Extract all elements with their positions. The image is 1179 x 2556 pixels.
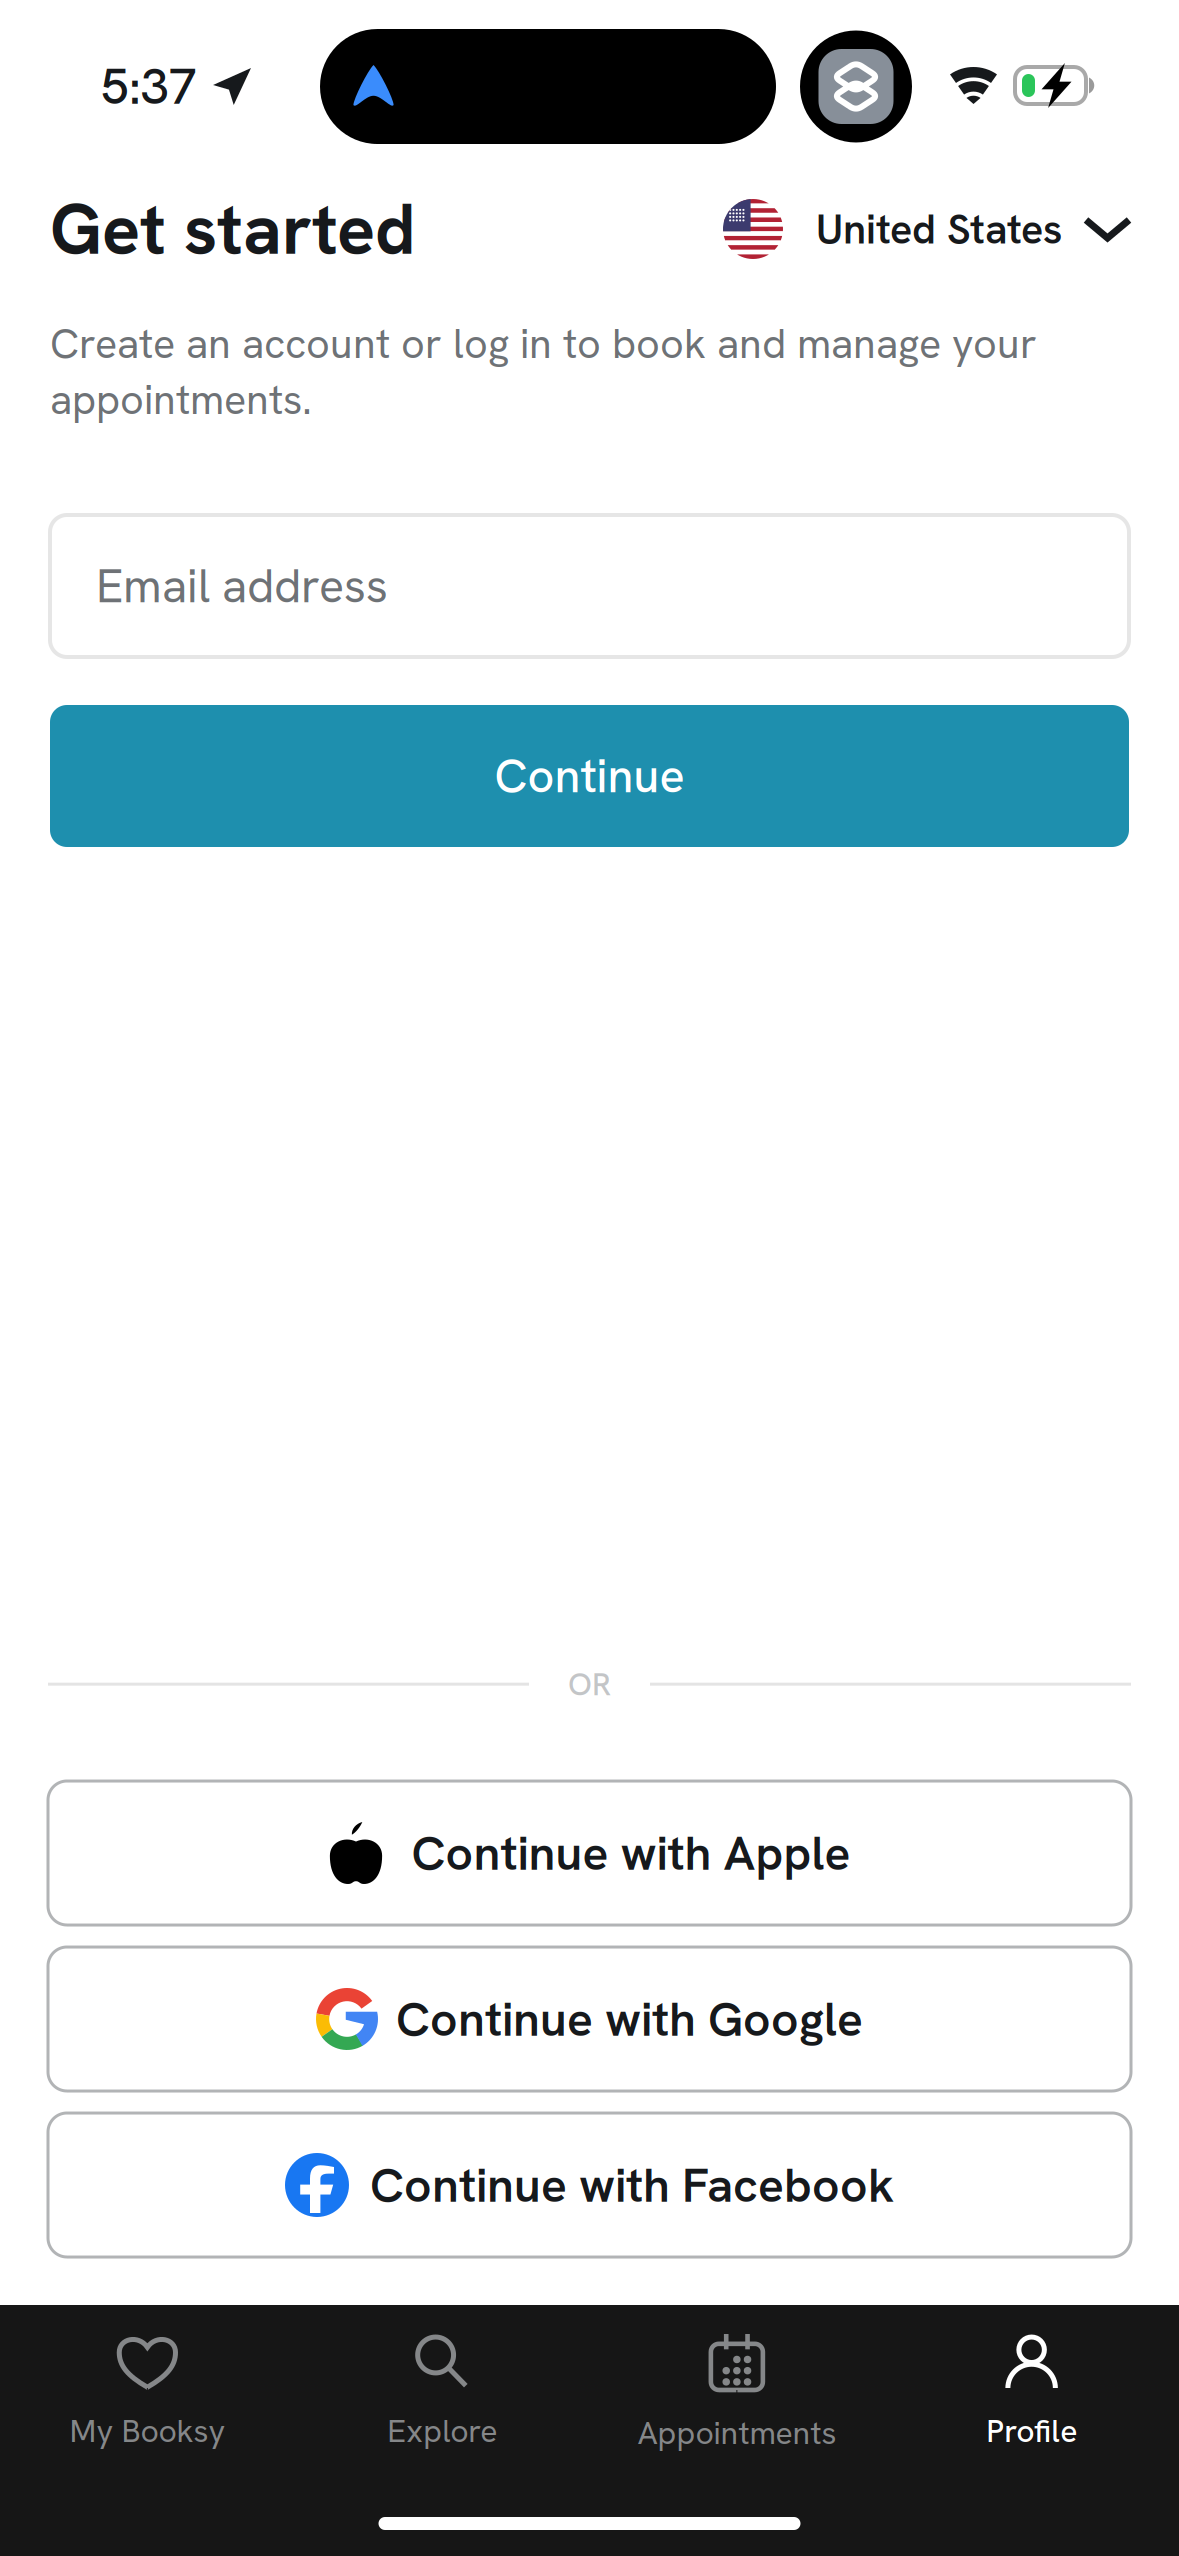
staticText: Continue with Apple: [411, 1822, 850, 1884]
button[interactable]: Continue with Google: [48, 1947, 1131, 2091]
button[interactable]: United States: [723, 199, 1129, 259]
staticText: Continue: [494, 746, 684, 806]
staticText: Get started: [50, 183, 416, 275]
staticText: OR: [568, 1663, 611, 1705]
staticText: appointments.: [50, 373, 312, 426]
staticText: Explore: [387, 2410, 497, 2452]
button[interactable]: My Booksy: [0, 2336, 295, 2452]
button[interactable]: Continue with Facebook: [48, 2113, 1131, 2257]
staticText: My Booksy: [69, 2410, 225, 2452]
button[interactable]: Profile: [884, 2336, 1179, 2452]
button[interactable]: Continue: [50, 705, 1129, 847]
staticText: Continue with Google: [396, 1988, 863, 2050]
staticText: Continue with Facebook: [370, 2154, 894, 2216]
button[interactable]: Explore: [295, 2336, 590, 2452]
staticText: United States: [816, 202, 1062, 256]
button[interactable]: Continue with Apple: [48, 1781, 1131, 1925]
staticText: Appointments: [637, 2412, 836, 2454]
button[interactable]: Email address: [50, 515, 1129, 657]
staticText: Profile: [986, 2410, 1077, 2452]
staticText: Email address: [96, 556, 388, 616]
staticText: 5:37: [101, 54, 197, 119]
button[interactable]: Appointments: [589, 2334, 884, 2454]
staticText: Create an account or log in to book and …: [50, 317, 1037, 370]
